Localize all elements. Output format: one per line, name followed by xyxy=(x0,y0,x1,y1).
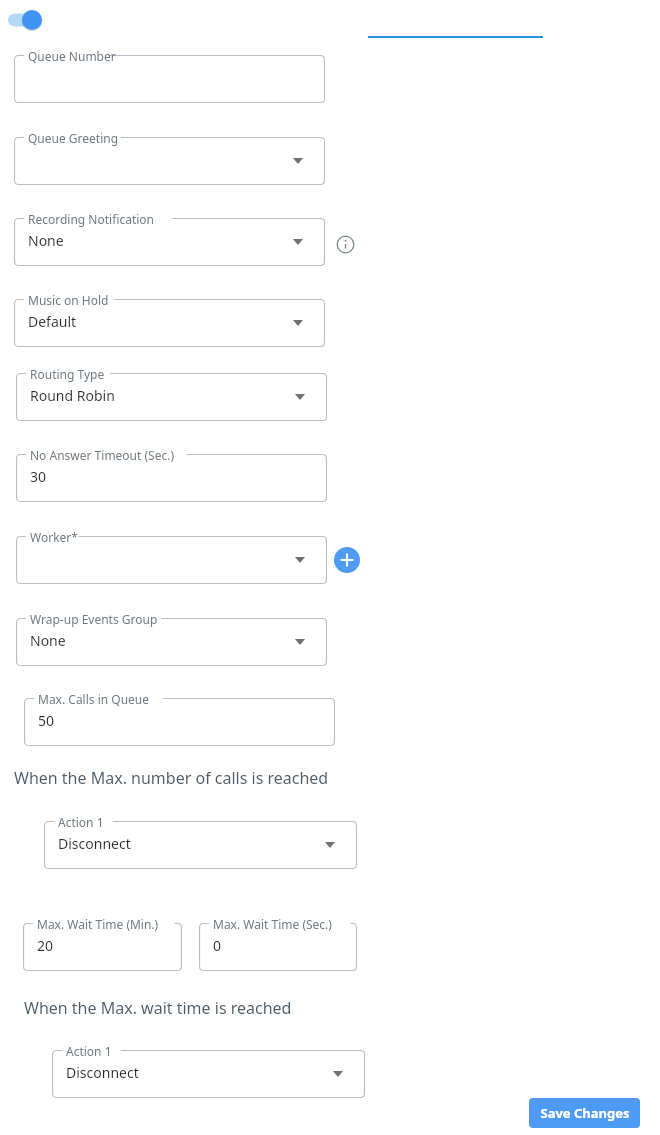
button[interactable]: Queue Greeting xyxy=(14,137,325,185)
staticText: Disconnect xyxy=(66,1063,139,1082)
staticText: Max. Wait Time (Sec.) xyxy=(213,916,332,932)
button[interactable]: Recording notification info xyxy=(336,235,355,254)
button[interactable]: Save Changes xyxy=(529,1098,640,1128)
button[interactable]: Worker* xyxy=(16,536,327,584)
staticText: Save Changes xyxy=(540,1104,630,1122)
staticText: 50 xyxy=(38,711,55,730)
button[interactable]: Max. Calls in Queue xyxy=(24,698,335,746)
button[interactable]: Enabled toggle xyxy=(6,8,48,32)
button[interactable]: Queue Number xyxy=(14,55,325,103)
staticText: Action 1 xyxy=(66,1043,112,1059)
staticText: When the Max. wait time is reached xyxy=(24,997,292,1019)
button[interactable]: Action 1 xyxy=(44,821,357,869)
staticText: Max. Wait Time (Min.) xyxy=(37,916,159,932)
button[interactable]: Max. Wait Time (Min.) xyxy=(23,923,182,971)
staticText: None xyxy=(28,231,64,250)
staticText: None xyxy=(30,631,66,650)
staticText: Worker* xyxy=(30,529,78,545)
staticText: 20 xyxy=(37,936,54,955)
staticText: Routing Type xyxy=(30,366,105,382)
button[interactable]: No Answer Timeout (Sec.) xyxy=(16,454,327,502)
button[interactable]: Max. Wait Time (Sec.) xyxy=(199,923,357,971)
staticText: Default xyxy=(28,312,77,331)
button[interactable]: Music on Hold xyxy=(14,299,325,347)
button[interactable]: Wrap-up Events Group xyxy=(16,618,327,666)
staticText: Queue Greeting xyxy=(28,130,119,146)
button[interactable]: Routing Type xyxy=(16,373,327,421)
staticText: No Answer Timeout (Sec.) xyxy=(30,447,175,463)
button[interactable]: Add worker xyxy=(334,547,360,573)
staticText: When the Max. number of calls is reached xyxy=(14,767,329,789)
staticText: 30 xyxy=(30,467,47,486)
staticText: Action 1 xyxy=(58,814,104,830)
staticText: Max. Calls in Queue xyxy=(38,691,150,707)
button[interactable]: Recording Notification xyxy=(14,218,325,266)
staticText: Recording Notification xyxy=(28,211,154,227)
button[interactable]: Action 1 xyxy=(52,1050,365,1098)
staticText: Queue Number xyxy=(28,48,116,64)
staticText: Wrap-up Events Group xyxy=(30,611,158,627)
staticText: Disconnect xyxy=(58,834,131,853)
staticText: Music on Hold xyxy=(28,292,109,308)
staticText: Round Robin xyxy=(30,386,115,405)
staticText: 0 xyxy=(213,936,222,955)
